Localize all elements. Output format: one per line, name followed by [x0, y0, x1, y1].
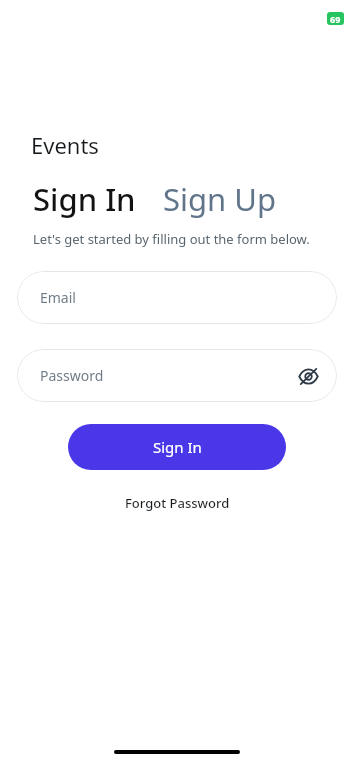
staticText: Email: [40, 288, 76, 307]
staticText: Password: [40, 366, 104, 385]
button[interactable]: Forgot Password: [117, 490, 238, 516]
staticText: Sign In: [33, 178, 136, 220]
staticText: Events: [31, 130, 99, 160]
staticText: Sign Up: [163, 178, 277, 220]
staticText: Let's get started by filling out the for…: [33, 230, 310, 248]
staticText: 69: [330, 13, 341, 25]
button[interactable]: Sign In: [33, 178, 136, 220]
button[interactable]: Sign In: [68, 424, 286, 470]
button[interactable]: Sign Up: [163, 178, 277, 220]
button[interactable]: Password: [17, 349, 337, 402]
staticText: Forgot Password: [125, 494, 230, 512]
button[interactable]: Show password: [295, 363, 321, 389]
button[interactable]: Email: [17, 271, 337, 324]
staticText: Sign In: [153, 437, 202, 457]
